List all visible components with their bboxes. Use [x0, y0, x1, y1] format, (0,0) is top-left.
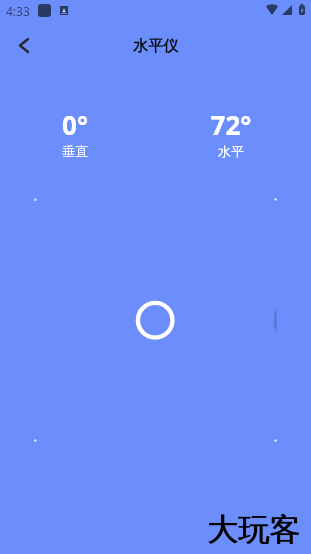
staticText: 水平仪 [133, 37, 178, 56]
button[interactable]: Back [6, 28, 41, 63]
staticText: 水平 [171, 143, 291, 159]
staticText: 大玩客 [207, 510, 300, 549]
staticText: 大玩客 [208, 510, 301, 549]
staticText: 大玩客 [207, 510, 300, 549]
staticText: 0° [15, 107, 135, 142]
staticText: 4:33 [6, 3, 30, 19]
button[interactable]: Calibrate level [0, 0, 311, 554]
staticText: 72° [171, 107, 291, 142]
staticText: 垂直 [15, 143, 135, 159]
